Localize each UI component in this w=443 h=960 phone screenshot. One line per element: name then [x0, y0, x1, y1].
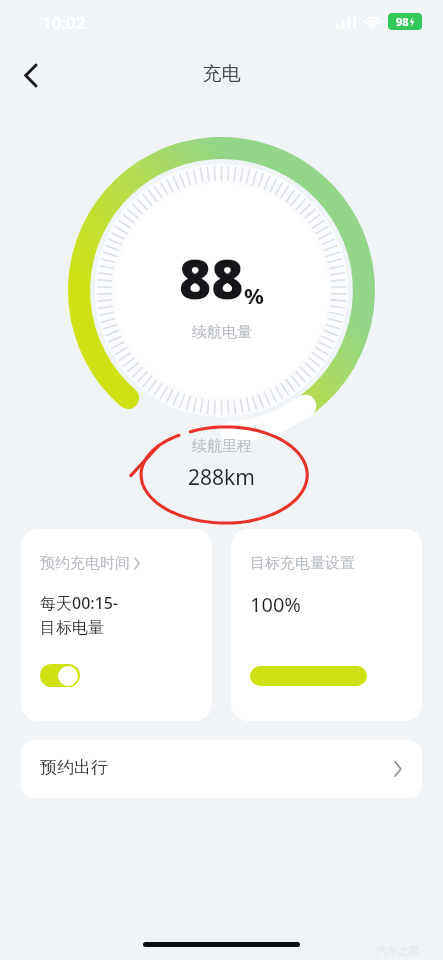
button[interactable]: Toggle scheduled charging — [40, 664, 80, 687]
staticText: 预约出行 — [40, 757, 108, 778]
staticText: 充电 — [0, 62, 443, 86]
staticText: 目标充电量设置 — [250, 554, 355, 573]
staticText: 10:02 — [42, 11, 86, 34]
staticText: 汽车之家 — [376, 944, 420, 958]
staticText: 预约充电时间 — [40, 554, 130, 573]
button[interactable]: 目标充电量设置 — [231, 529, 422, 721]
button[interactable]: 预约充电时间 — [21, 529, 212, 721]
button[interactable]: Back — [8, 52, 54, 98]
staticText: 88 — [179, 240, 244, 315]
staticText: 98 — [396, 14, 409, 29]
staticText: 目标电量 — [40, 618, 104, 638]
staticText: % — [244, 280, 264, 310]
staticText: 每天00:15- — [40, 592, 119, 614]
staticText: 100% — [250, 591, 301, 618]
staticText: 续航电量 — [192, 323, 252, 342]
staticText: 288km — [188, 463, 255, 492]
button[interactable]: 预约出行 — [21, 740, 422, 798]
staticText: 续航里程 — [192, 437, 252, 456]
